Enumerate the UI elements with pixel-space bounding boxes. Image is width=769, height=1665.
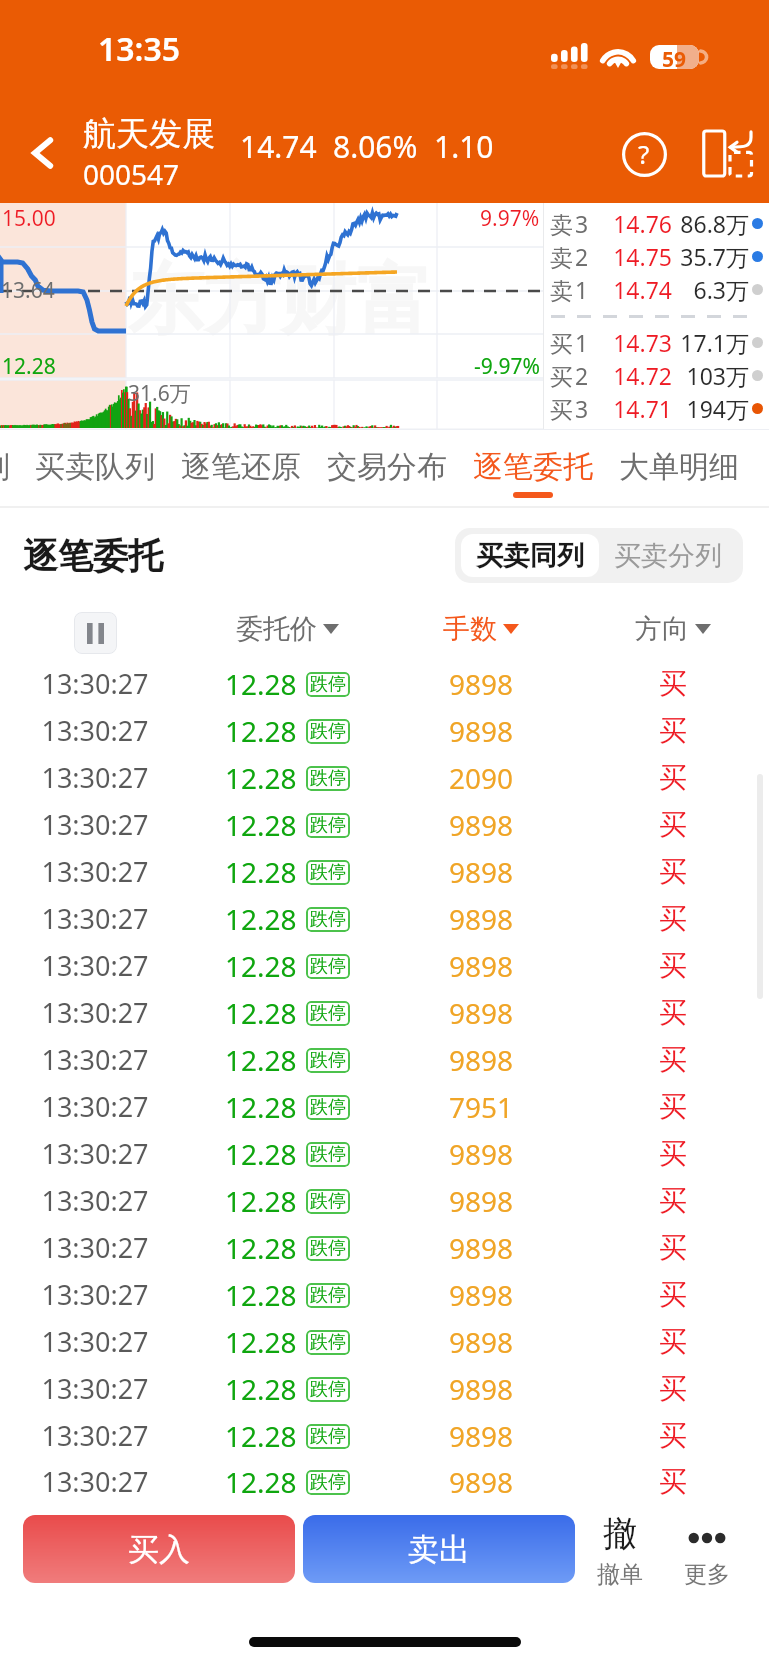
- button[interactable]: Back: [8, 118, 78, 188]
- button[interactable]: 13:30:27: [0, 1036, 769, 1083]
- staticText: 更多: [684, 1560, 730, 1589]
- button[interactable]: 买2: [544, 359, 769, 392]
- staticText: 跌停: [310, 673, 346, 696]
- staticText: 13:30:27: [0, 665, 190, 702]
- button[interactable]: 13:30:27: [0, 801, 769, 848]
- staticText: 12.28: [225, 1182, 297, 1220]
- staticText: 买卖队列: [35, 448, 155, 486]
- staticText: 12.28: [225, 806, 297, 844]
- staticText: 12.28: [225, 1463, 297, 1501]
- staticText: 买: [577, 1136, 769, 1171]
- button[interactable]: 13:30:27: [0, 895, 769, 942]
- staticText: 大单明细: [619, 448, 739, 486]
- staticText: 12.28: [2, 352, 56, 381]
- staticText: 14.74: [240, 126, 317, 167]
- staticText: 跌停: [310, 1190, 346, 1213]
- staticText: 13:30:27: [0, 806, 190, 843]
- button[interactable]: 买1: [544, 326, 769, 359]
- button[interactable]: 13:30:27: [0, 660, 769, 707]
- button[interactable]: 13:30:27: [0, 1412, 769, 1459]
- staticText: 买: [577, 854, 769, 889]
- button[interactable]: 13:30:27: [0, 754, 769, 801]
- staticText: 12.28: [225, 1041, 297, 1079]
- staticText: 194万: [672, 393, 749, 424]
- button[interactable]: 13:30:27: [0, 1130, 769, 1177]
- staticText: 跌停: [310, 1096, 346, 1119]
- staticText: 买: [577, 666, 769, 701]
- button[interactable]: 买卖分列: [614, 534, 722, 577]
- staticText: 9898: [385, 1041, 577, 1079]
- button[interactable]: 13:30:27: [0, 1083, 769, 1130]
- staticText: 买: [577, 1042, 769, 1077]
- staticText: 2090: [385, 759, 577, 797]
- staticText: 买入: [128, 1530, 190, 1569]
- staticText: 14.71: [594, 393, 672, 424]
- staticText: 13:30:27: [0, 1135, 190, 1172]
- button[interactable]: 13:30:27: [0, 942, 769, 989]
- button[interactable]: 13:30:27: [0, 989, 769, 1036]
- button[interactable]: 方向: [577, 598, 769, 660]
- staticText: 12.28: [225, 1229, 297, 1267]
- staticText: 跌停: [310, 955, 346, 978]
- staticText: 12.28: [225, 994, 297, 1032]
- staticText: 12.28: [225, 1370, 297, 1408]
- button[interactable]: 交易分布: [314, 430, 460, 508]
- button[interactable]: 手数: [385, 598, 577, 660]
- button[interactable]: 13:30:27: [0, 707, 769, 754]
- button[interactable]: 13:30:27: [0, 1365, 769, 1412]
- button[interactable]: 买3: [544, 392, 769, 425]
- staticText: 跌停: [310, 1471, 346, 1494]
- button[interactable]: 卖1: [544, 273, 769, 306]
- staticText: 买: [577, 1277, 769, 1312]
- staticText: 卖2: [550, 241, 594, 272]
- button[interactable]: 卖2: [544, 240, 769, 273]
- button[interactable]: 13:30:27: [0, 1177, 769, 1224]
- staticText: 13:30:27: [0, 900, 190, 937]
- staticText: ?: [638, 136, 650, 171]
- staticText: 买卖分列: [614, 539, 722, 573]
- staticText: 跌停: [310, 908, 346, 931]
- staticText: 跌停: [310, 1284, 346, 1307]
- staticText: 逐笔委托: [23, 534, 163, 578]
- button[interactable]: 13:30:27: [0, 1224, 769, 1271]
- button[interactable]: 13:30:27: [0, 848, 769, 895]
- staticText: 买: [577, 1183, 769, 1218]
- button[interactable]: Split screen: [696, 125, 758, 183]
- button[interactable]: 卖3: [544, 207, 769, 240]
- staticText: 15.00: [2, 204, 56, 233]
- staticText: 买: [577, 713, 769, 748]
- staticText: 买: [577, 1089, 769, 1124]
- button[interactable]: 买卖队列: [22, 430, 168, 508]
- staticText: 9898: [385, 1417, 577, 1455]
- button[interactable]: 卖出: [303, 1515, 575, 1583]
- button[interactable]: 逐笔委托: [460, 430, 606, 508]
- button[interactable]: 委托价: [190, 598, 385, 660]
- button[interactable]: 买入: [23, 1515, 295, 1583]
- button[interactable]: Help: [614, 124, 674, 184]
- button[interactable]: 更多: [662, 1510, 752, 1596]
- staticText: 9898: [385, 1229, 577, 1267]
- staticText: 买: [577, 1418, 769, 1453]
- button[interactable]: 大单明细: [606, 430, 752, 508]
- staticText: 9898: [385, 1276, 577, 1314]
- button[interactable]: 13:30:27: [0, 1459, 769, 1504]
- button[interactable]: 逐笔还原: [168, 430, 314, 508]
- staticText: 买: [577, 948, 769, 983]
- staticText: 撤: [603, 1512, 637, 1555]
- staticText: 买: [577, 760, 769, 795]
- staticText: 跌停: [310, 1331, 346, 1354]
- staticText: 9898: [385, 1463, 577, 1501]
- staticText: 卖3: [550, 208, 594, 239]
- button[interactable]: Pause: [74, 612, 117, 654]
- button[interactable]: 买卖同列: [476, 534, 584, 577]
- staticText: 9898: [385, 994, 577, 1032]
- button[interactable]: 撤: [575, 1510, 665, 1596]
- staticText: 方向: [635, 612, 689, 646]
- staticText: 13:30:27: [0, 1323, 190, 1360]
- staticText: 跌停: [310, 1378, 346, 1401]
- staticText: 跌停: [310, 720, 346, 743]
- button[interactable]: 13:30:27: [0, 1318, 769, 1365]
- staticText: 13:30:27: [0, 1417, 190, 1454]
- button[interactable]: 列: [0, 430, 14, 508]
- button[interactable]: 13:30:27: [0, 1271, 769, 1318]
